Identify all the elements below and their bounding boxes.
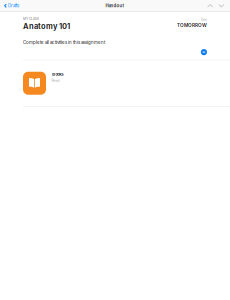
staticText: Drafts xyxy=(8,3,19,8)
button[interactable]: Next item xyxy=(216,1,227,11)
button[interactable]: Previous item xyxy=(205,1,216,11)
staticText: Read xyxy=(51,78,59,82)
button[interactable]: Drafts xyxy=(3,1,20,11)
staticText: MY CLASS xyxy=(23,17,39,21)
staticText: Complete all activities in this assignme… xyxy=(23,40,105,45)
staticText: Due xyxy=(201,18,207,21)
staticText: Anatomy 101 xyxy=(23,22,70,31)
staticText: iBooks xyxy=(51,72,63,77)
staticText: Handout xyxy=(105,3,124,8)
staticText: TOMORROW xyxy=(177,22,207,28)
button[interactable]: iBooks xyxy=(0,60,230,106)
